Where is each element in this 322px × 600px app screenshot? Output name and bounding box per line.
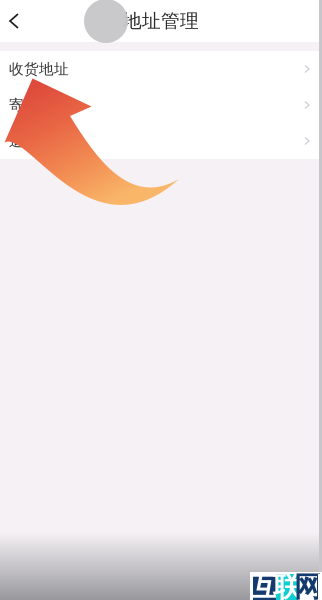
staticText: 寄件地址: [9, 96, 69, 114]
staticText: 收货地址: [9, 60, 69, 78]
button[interactable]: Back: [0, 1, 30, 41]
staticText: 联: [273, 570, 301, 600]
button[interactable]: 寄件地址: [0, 87, 322, 123]
button[interactable]: 退货地址: [0, 123, 322, 159]
staticText: 网: [294, 570, 322, 600]
button[interactable]: 收货地址: [0, 51, 322, 87]
staticText: 互: [250, 570, 278, 600]
staticText: 地址管理: [123, 9, 199, 32]
staticText: 退货地址: [9, 132, 69, 150]
